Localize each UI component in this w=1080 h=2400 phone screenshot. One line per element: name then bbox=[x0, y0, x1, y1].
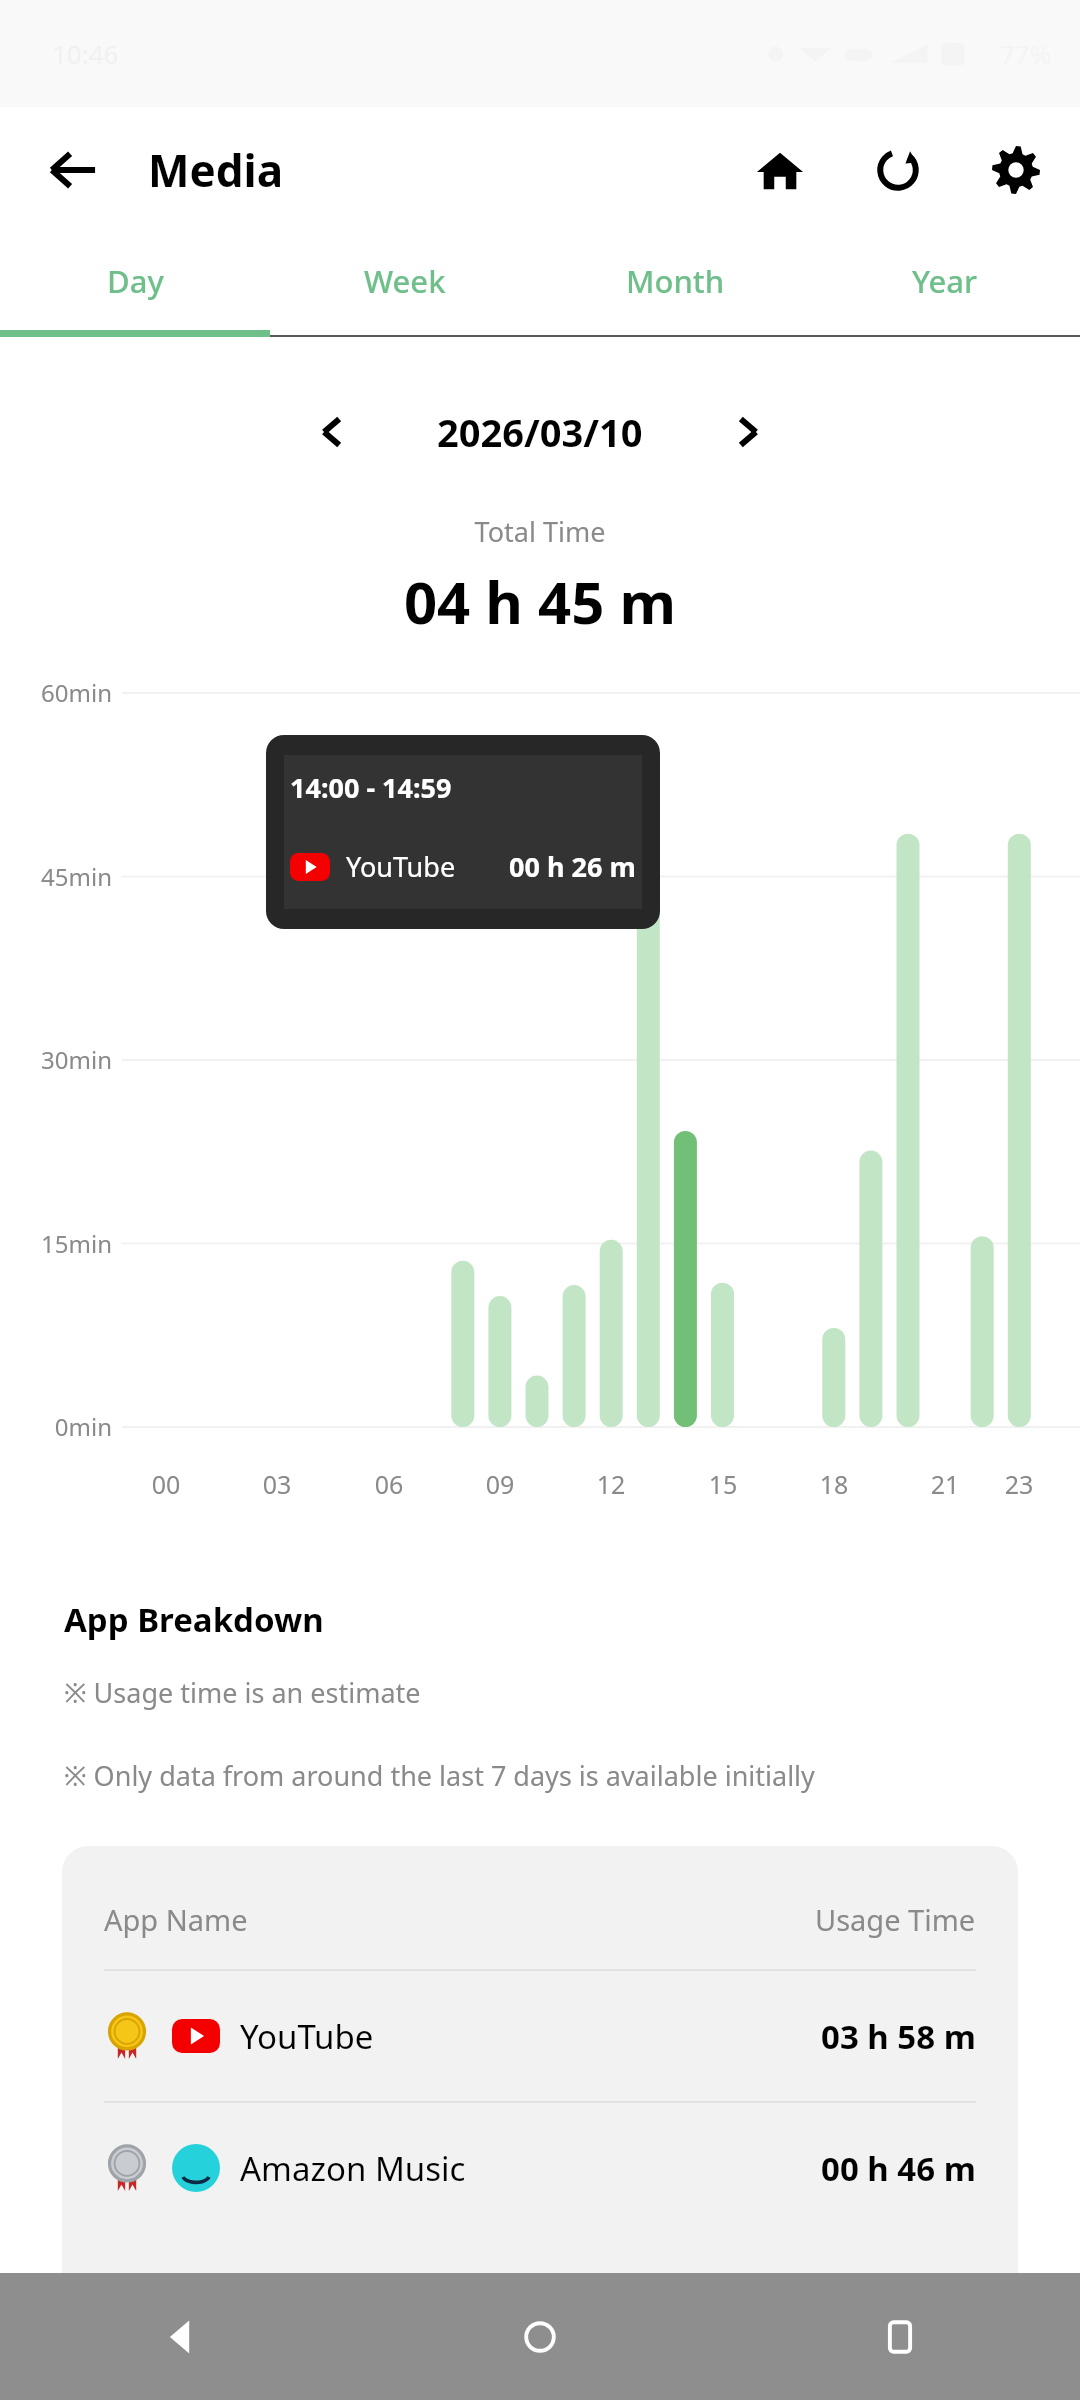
staticText: 21 bbox=[913, 1467, 977, 1501]
staticText: 30min bbox=[0, 1043, 112, 1076]
staticText: Usage Time bbox=[815, 1900, 976, 1939]
button[interactable]: Refresh bbox=[862, 134, 934, 206]
staticText: ※ Usage time is an estimate bbox=[64, 1674, 421, 1711]
staticText: 60min bbox=[0, 676, 112, 709]
staticText: Day bbox=[107, 260, 164, 302]
staticText: 18 bbox=[802, 1467, 866, 1501]
button[interactable]: Back bbox=[0, 2273, 360, 2400]
button[interactable]: Previous day bbox=[293, 393, 371, 471]
staticText: Media bbox=[148, 140, 284, 200]
staticText: Month bbox=[626, 260, 725, 302]
button[interactable]: Settings bbox=[980, 134, 1052, 206]
staticText: 00 bbox=[134, 1467, 198, 1501]
staticText: 12 bbox=[579, 1467, 643, 1501]
staticText: Year bbox=[912, 260, 978, 302]
staticText: 03 bbox=[245, 1467, 309, 1501]
staticText: 0min bbox=[0, 1410, 112, 1443]
button[interactable]: Month bbox=[540, 232, 810, 330]
button[interactable]: Home bbox=[744, 134, 816, 206]
staticText: 00 h 46 m bbox=[821, 2146, 976, 2191]
staticText: App Name bbox=[104, 1900, 248, 1939]
staticText: ※ Only data from around the last 7 days … bbox=[64, 1757, 815, 1794]
staticText: Week bbox=[364, 260, 446, 302]
button[interactable]: Day bbox=[0, 232, 270, 330]
staticText: 15min bbox=[0, 1227, 112, 1260]
button[interactable]: Next day bbox=[709, 393, 787, 471]
staticText: 45min bbox=[0, 860, 112, 893]
button[interactable]: 14:00 - 14:59 bbox=[266, 735, 660, 929]
button[interactable]: Week bbox=[270, 232, 540, 330]
staticText: 14:00 - 14:59 bbox=[290, 769, 452, 806]
button[interactable]: Year bbox=[810, 232, 1080, 330]
staticText: 23 bbox=[987, 1467, 1051, 1501]
staticText: YouTube bbox=[240, 2014, 374, 2059]
staticText: Total Time bbox=[0, 513, 1080, 550]
staticText: 00 h 26 m bbox=[509, 848, 636, 885]
staticText: 2026/03/10 bbox=[437, 406, 643, 458]
staticText: Amazon Music bbox=[240, 2146, 466, 2191]
staticText: 04 h 45 m bbox=[0, 562, 1080, 641]
staticText: 15 bbox=[691, 1467, 755, 1501]
button[interactable]: Amazon Music bbox=[62, 2103, 1018, 2233]
button[interactable]: Recents bbox=[720, 2273, 1080, 2400]
staticText: 09 bbox=[468, 1467, 532, 1501]
button[interactable]: Back bbox=[34, 131, 112, 209]
staticText: 03 h 58 m bbox=[821, 2014, 976, 2059]
button[interactable]: YouTube bbox=[62, 1971, 1018, 2101]
button[interactable]: Home bbox=[360, 2273, 720, 2400]
staticText: 06 bbox=[357, 1467, 421, 1501]
staticText: YouTube bbox=[346, 848, 456, 885]
staticText: App Breakdown bbox=[64, 1597, 324, 1642]
